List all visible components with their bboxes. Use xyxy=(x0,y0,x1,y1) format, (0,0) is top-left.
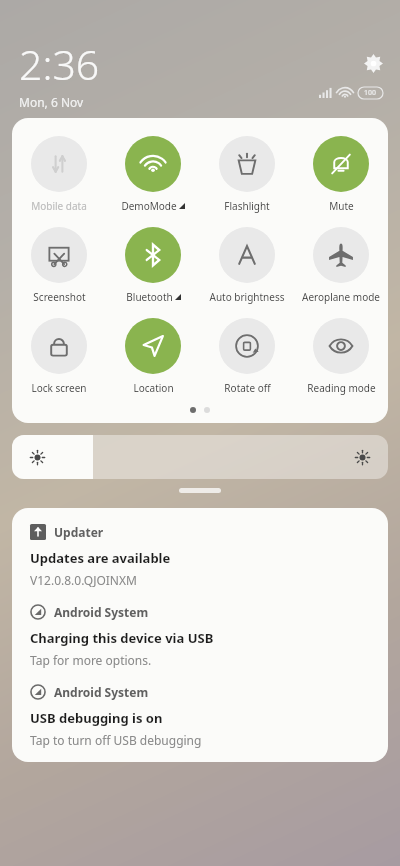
staticText: Tap for more options. xyxy=(30,652,152,668)
button[interactable]: Android System xyxy=(12,588,388,668)
staticText: Mon, 6 Nov xyxy=(19,94,84,110)
button[interactable]: Location xyxy=(106,314,200,399)
staticText: V12.0.8.0.QJOINXM xyxy=(30,572,137,588)
staticText: Flashlight xyxy=(224,199,270,213)
staticText: Location xyxy=(133,381,174,395)
staticText: Rotate off xyxy=(224,381,271,395)
staticText: Charging this device via USB xyxy=(30,629,214,647)
button[interactable]: Bluetooth xyxy=(106,223,200,308)
staticText: Reading mode xyxy=(307,381,376,395)
staticText: Auto brightness xyxy=(209,290,285,304)
button[interactable]: Flashlight xyxy=(200,132,294,217)
staticText: Mute xyxy=(329,199,354,213)
staticText: DemoMode xyxy=(121,199,177,213)
button[interactable]: Screenshot xyxy=(12,223,106,308)
staticText: Android System xyxy=(54,684,149,700)
button[interactable]: Mute xyxy=(294,132,388,217)
staticText: Screenshot xyxy=(33,290,86,304)
staticText: Mobile data xyxy=(31,199,87,213)
staticText: 2:36 xyxy=(19,36,100,92)
button[interactable]: Brightness xyxy=(12,435,388,479)
button[interactable]: Rotate off xyxy=(200,314,294,399)
button[interactable]: DemoMode xyxy=(106,132,200,217)
button[interactable]: Mobile data xyxy=(12,132,106,217)
staticText: USB debugging is on xyxy=(30,709,163,727)
button[interactable]: Reading mode xyxy=(294,314,388,399)
staticText: Updater xyxy=(54,524,104,540)
staticText: Updates are available xyxy=(30,549,171,567)
button[interactable]: Settings xyxy=(358,48,388,78)
staticText: Lock screen xyxy=(31,381,87,395)
button[interactable]: Lock screen xyxy=(12,314,106,399)
button[interactable]: Updater xyxy=(12,508,388,588)
button[interactable]: Auto brightness xyxy=(200,223,294,308)
staticText: 100 xyxy=(364,88,377,98)
staticText: Android System xyxy=(54,604,149,620)
staticText: Aeroplane mode xyxy=(302,290,380,304)
staticText: Bluetooth xyxy=(126,290,173,304)
button[interactable]: Android System xyxy=(12,668,388,748)
button[interactable]: Aeroplane mode xyxy=(294,223,388,308)
staticText: Tap to turn off USB debugging xyxy=(30,732,202,748)
